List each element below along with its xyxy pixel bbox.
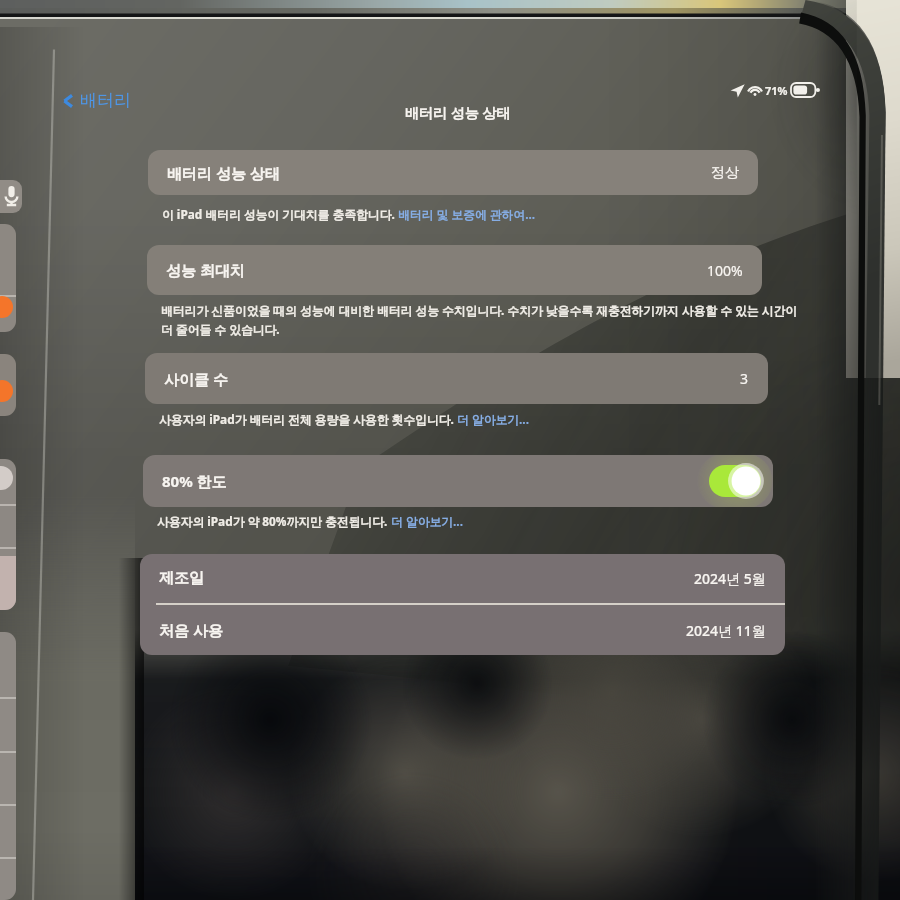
staticText: 3 [740, 369, 749, 388]
staticText: 성능 최대치 [166, 260, 245, 280]
button[interactable]: Microphone [0, 180, 22, 213]
staticText: 정상 [711, 164, 739, 182]
staticText: 2024년 11월 [686, 621, 766, 640]
staticText: 71% [765, 83, 788, 98]
button[interactable]: 80% limit, on [709, 465, 761, 497]
staticText: 배터리 [80, 90, 131, 111]
staticText: 사용자의 iPad가 약 80%까지만 충전됩니다. [157, 513, 391, 529]
button[interactable]: 제조일 [140, 554, 785, 603]
button[interactable]: 성능 최대치 [147, 245, 762, 295]
staticText: 제조일 [159, 569, 204, 588]
staticText: 100% [707, 261, 743, 280]
button[interactable]: Back to 배터리 [58, 90, 131, 111]
staticText: 2024년 5월 [694, 569, 766, 588]
staticText: 사용자의 iPad가 배터리 전체 용량을 사용한 횟수입니다. [159, 411, 457, 427]
staticText: 배터리가 신품이었을 때의 성능에 대비한 배터리 성능 수치입니다. 수치가 … [161, 302, 798, 318]
button[interactable]: 더 알아보기... [391, 513, 463, 529]
staticText: 더 줄어들 수 있습니다. [161, 321, 280, 337]
button[interactable]: 사이클 수 [145, 353, 768, 404]
staticText: 사이클 수 [164, 369, 228, 389]
button[interactable]: 배터리 성능 상태 [148, 150, 758, 195]
staticText: 배터리 성능 상태 [167, 163, 280, 183]
staticText: 배터리 성능 상태 [405, 103, 511, 122]
button[interactable]: 더 알아보기... [457, 411, 529, 427]
staticText: 이 iPad 배터리 성능이 기대치를 충족합니다. [162, 206, 398, 222]
button[interactable]: 배터리 및 보증에 관하여... [398, 206, 536, 222]
staticText: 처음 사용 [159, 620, 223, 640]
button[interactable]: 80% 한도 [143, 455, 773, 507]
staticText: 80% 한도 [162, 471, 227, 491]
button[interactable]: 처음 사용 [140, 605, 785, 655]
